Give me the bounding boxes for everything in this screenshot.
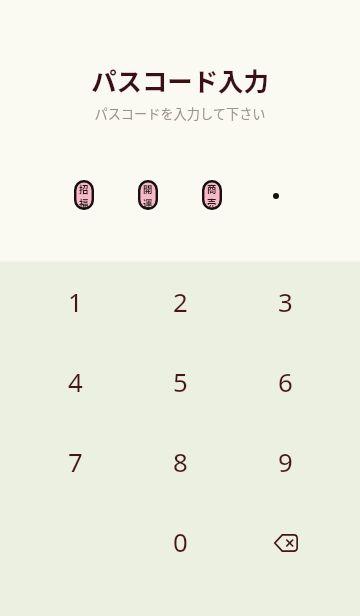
button[interactable]: 8 xyxy=(142,426,218,496)
staticText: 2 xyxy=(173,284,188,319)
button[interactable]: 5 xyxy=(142,346,218,416)
button[interactable]: 1 xyxy=(37,266,113,336)
button[interactable]: 9 xyxy=(247,426,323,496)
staticText: 売 xyxy=(207,196,217,210)
button[interactable]: 2 xyxy=(142,266,218,336)
staticText: パスコードを入力して下さい xyxy=(94,104,266,123)
button[interactable]: 6 xyxy=(247,346,323,416)
staticText: 0 xyxy=(173,524,188,559)
staticText: 5 xyxy=(173,364,188,399)
button[interactable]: Backspace xyxy=(248,508,324,578)
staticText: 運 xyxy=(143,196,153,210)
button[interactable]: 0 xyxy=(142,506,218,576)
staticText: パスコード入力 xyxy=(91,62,269,99)
button[interactable]: 7 xyxy=(37,426,113,496)
button[interactable]: 3 xyxy=(247,266,323,336)
staticText: 開 xyxy=(143,182,153,196)
staticText: 1 xyxy=(68,284,83,319)
other: Passcode digit placeholder xyxy=(273,193,279,199)
staticText: 福 xyxy=(79,196,89,210)
button[interactable]: 4 xyxy=(37,346,113,416)
staticText: 7 xyxy=(68,444,83,479)
staticText: 8 xyxy=(173,444,188,479)
staticText: 3 xyxy=(278,284,293,319)
staticText: 6 xyxy=(278,364,293,399)
staticText: 4 xyxy=(68,364,83,399)
staticText: 商 xyxy=(207,182,217,196)
staticText: 9 xyxy=(278,444,293,479)
staticText: 招 xyxy=(79,182,89,196)
